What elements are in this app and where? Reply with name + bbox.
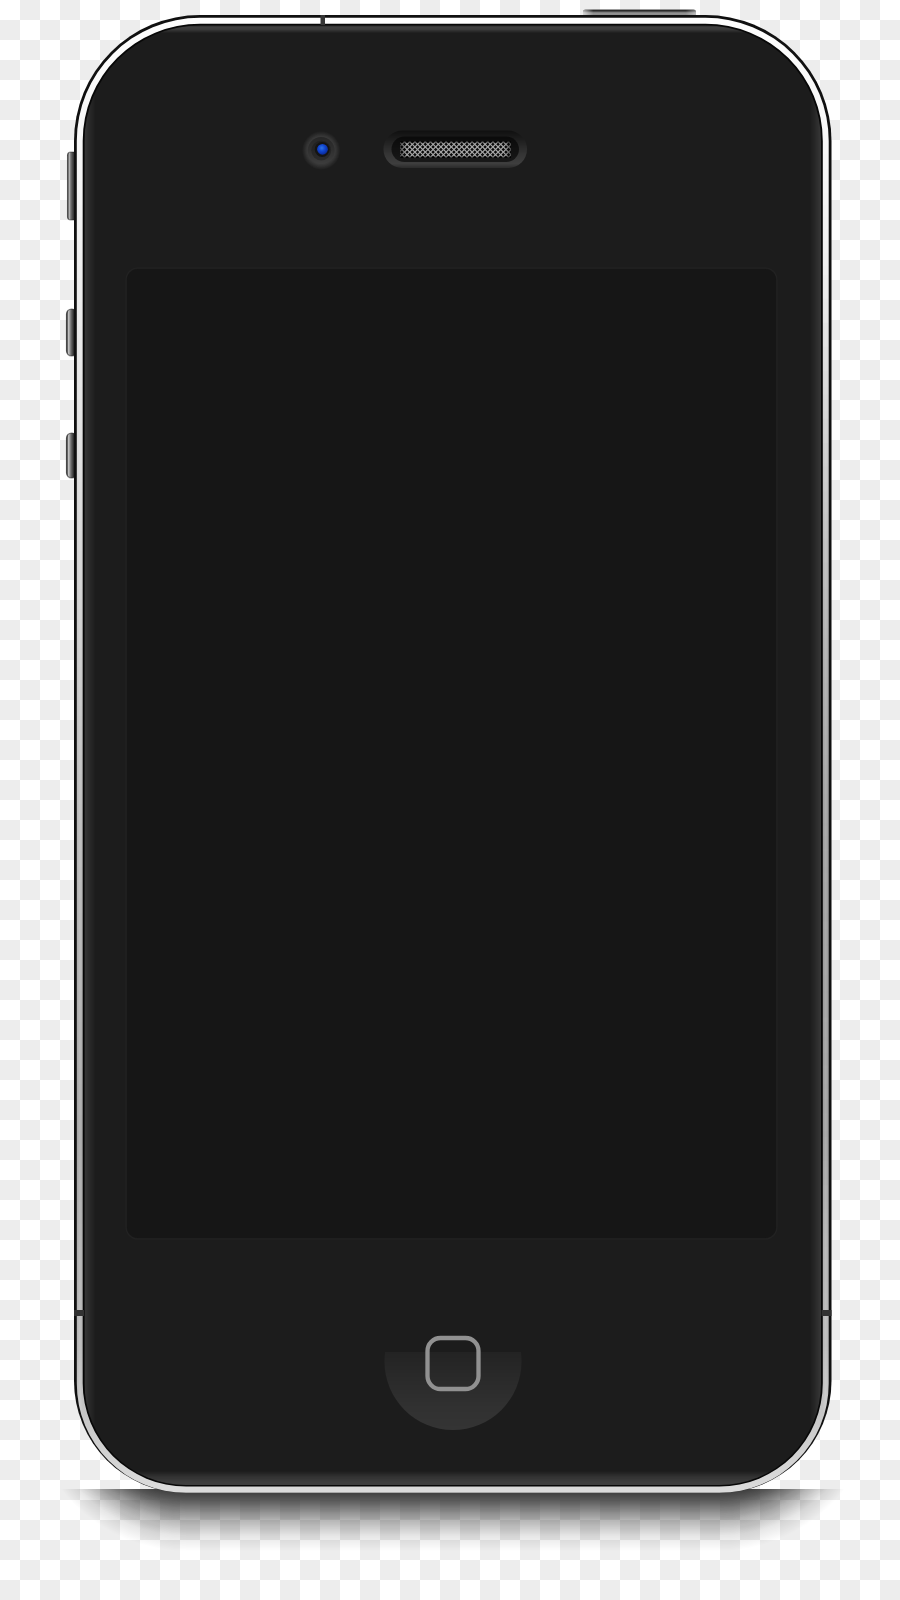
button[interactable]: Smartphone product illustration [0, 0, 900, 1600]
